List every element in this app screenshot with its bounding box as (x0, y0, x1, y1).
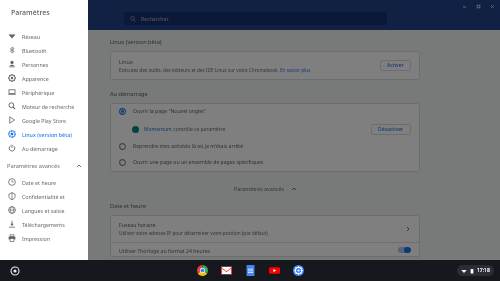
button[interactable]: Rechercher (124, 12, 387, 25)
button[interactable]: Momentum (144, 126, 172, 133)
staticText: Au démarrage (22, 145, 58, 152)
staticText: Fuseau horaire (119, 221, 156, 228)
button[interactable]: Ouvrir la page "Nouvel onglet" (110, 103, 420, 120)
button[interactable]: Langues et saisie (0, 203, 88, 217)
button[interactable]: Périphérique (0, 85, 88, 99)
button[interactable]: Téléchargements (0, 217, 88, 231)
staticText: Périphérique (22, 89, 55, 96)
button[interactable]: Close (488, 2, 497, 11)
button[interactable]: Réseau (0, 29, 88, 43)
button[interactable]: Activer (380, 60, 411, 71)
button[interactable]: Moteur de recherche (0, 99, 88, 113)
staticText: Linux (version bêta) (22, 131, 72, 138)
staticText: Confidentialité et sécurité (22, 193, 85, 200)
staticText: Impression (22, 235, 50, 242)
button[interactable]: Linux (version bêta) (0, 127, 88, 141)
button[interactable]: Launcher (9, 265, 20, 276)
button[interactable]: Chrome (195, 263, 210, 278)
button[interactable]: Désactiver (371, 124, 411, 135)
staticText: Google Play Store (22, 117, 66, 124)
staticText: Activer (387, 62, 404, 69)
staticText: Bluetooth (22, 47, 47, 54)
staticText: Personnes (22, 61, 49, 68)
staticText: Reprendre mes activités là où je m'étais… (133, 143, 244, 150)
button[interactable]: Date et heure (0, 175, 88, 189)
button[interactable]: YouTube (267, 263, 282, 278)
staticText: Moteur de recherche (22, 103, 75, 110)
button[interactable]: Google Play Store (0, 113, 88, 127)
button[interactable]: Paramètres avancés (231, 182, 300, 195)
staticText: Rechercher (141, 15, 169, 22)
button[interactable]: Utiliser l'horloge au format 24 heures (110, 243, 420, 257)
button[interactable]: Apparence (0, 71, 88, 85)
button[interactable]: Minimize (460, 2, 469, 11)
staticText: Apparence (22, 75, 49, 82)
staticText: contrôle ce paramètre (172, 126, 226, 133)
button[interactable]: Fuseau horaire (110, 215, 420, 242)
staticText: Utiliser votre adresse IP pour détermine… (119, 230, 268, 236)
button[interactable]: Docs (243, 263, 258, 278)
staticText: Ouvrir la page "Nouvel onglet" (133, 108, 207, 115)
button[interactable]: Settings (291, 263, 306, 278)
button[interactable]: Au démarrage (0, 141, 88, 155)
button[interactable]: Maximize (474, 2, 483, 11)
button[interactable]: 17:18 (457, 265, 494, 276)
staticText: Réseau (22, 33, 41, 40)
button[interactable]: Gmail (219, 263, 234, 278)
button[interactable]: Confidentialité et sécurité (0, 189, 88, 203)
staticText: Paramètres avancés (7, 162, 60, 170)
staticText: Utiliser l'horloge au format 24 heures (119, 247, 211, 254)
staticText: Date et heure (110, 202, 146, 210)
staticText: Exécutez des outils, des éditeurs et des… (119, 67, 280, 73)
staticText: Au démarrage (110, 90, 148, 98)
staticText: Paramètres (11, 8, 50, 18)
staticText: Linux (version bêta) (110, 38, 162, 46)
staticText: Ouvrir une page ou un ensemble de pages … (133, 159, 264, 166)
button[interactable]: Reprendre mes activités là où je m'étais… (110, 138, 420, 154)
staticText: Téléchargements (22, 221, 65, 228)
staticText: Date et heure (22, 179, 56, 186)
staticText: 17:18 (477, 267, 490, 274)
button[interactable]: Personnes (0, 57, 88, 71)
button[interactable]: En savoir plus (280, 67, 311, 73)
staticText: Désactiver (378, 126, 404, 133)
staticText: Paramètres avancés (234, 185, 285, 192)
button[interactable]: Bluetooth (0, 43, 88, 57)
button[interactable]: Impression (0, 231, 88, 245)
staticText: Langues et saisie (22, 207, 65, 214)
button[interactable]: Ouvrir une page ou un ensemble de pages … (110, 154, 420, 170)
staticText: Linux (119, 58, 133, 65)
button[interactable]: Paramètres avancés (0, 158, 88, 173)
